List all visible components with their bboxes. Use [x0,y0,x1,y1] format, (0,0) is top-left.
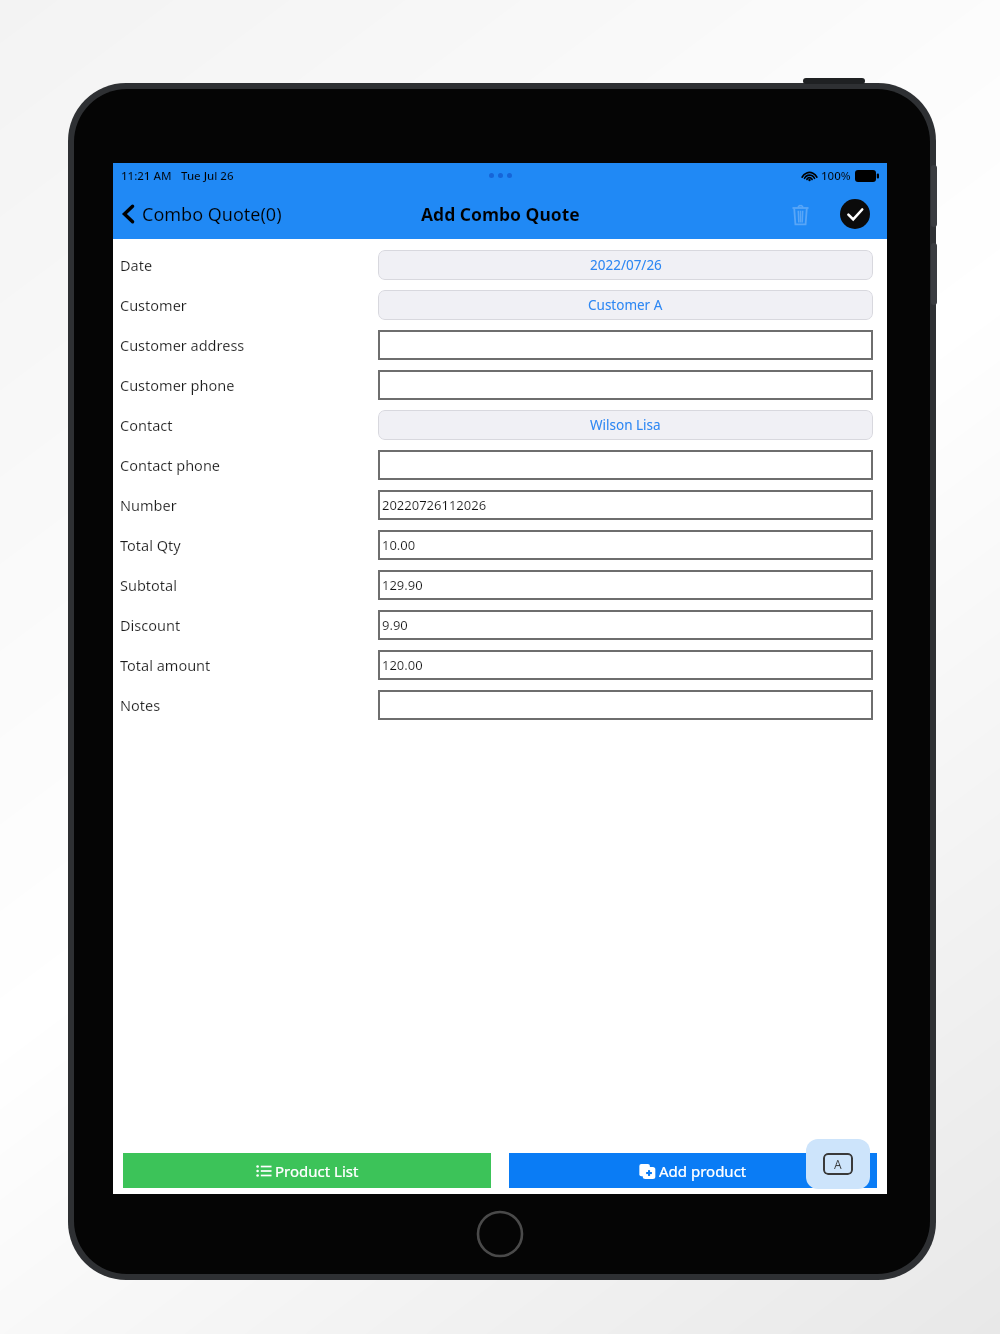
staticText: 120.00 [382,656,423,674]
button[interactable]: Total amount [113,645,887,685]
button[interactable]: Contact phone [113,445,887,485]
button[interactable]: Delete [783,197,817,231]
staticText: Add Combo Quote [421,202,580,226]
staticText: Tue Jul 26 [181,168,234,184]
staticText: Notes [120,695,161,715]
staticText: Wilson Lisa [590,416,661,434]
staticText: Product List [275,1161,359,1181]
staticText: 100% [821,168,851,184]
staticText: Discount [120,615,181,635]
button[interactable]: Total Qty [113,525,887,565]
staticText: 129.90 [382,576,423,594]
staticText: Add product [659,1161,747,1181]
staticText: Total Qty [120,535,181,555]
staticText: Customer A [588,296,663,314]
staticText: Subtotal [120,575,177,595]
staticText: 9.90 [382,616,408,634]
button[interactable]: Number [113,485,887,525]
button[interactable]: Combo Quote(0) [120,201,282,227]
staticText: 2022/07/26 [590,256,662,274]
button[interactable]: Product List [123,1153,491,1188]
staticText: 10.00 [382,536,416,554]
staticText: Customer address [120,335,245,355]
button[interactable]: Customer phone [113,365,887,405]
button[interactable]: Discount [113,605,887,645]
button[interactable]: Notes [113,685,887,725]
button[interactable]: Accessibility [806,1139,870,1189]
button[interactable]: Date [113,245,887,285]
staticText: Date [120,255,153,275]
staticText: Customer phone [120,375,235,395]
button[interactable]: Add product [509,1153,877,1188]
button[interactable]: Customer [113,285,887,325]
staticText: Number [120,495,177,515]
staticText: Contact phone [120,455,221,475]
button[interactable]: Subtotal [113,565,887,605]
staticText: Customer [120,295,187,315]
staticText: A [834,1156,842,1172]
staticText: Total amount [120,655,211,675]
staticText: Combo Quote(0) [142,202,282,227]
button[interactable]: Customer address [113,325,887,365]
staticText: Contact [120,415,173,435]
button[interactable]: Save [837,196,873,232]
staticText: 11:21 AM [121,168,172,184]
button[interactable]: Contact [113,405,887,445]
staticText: 20220726112026 [382,496,487,514]
